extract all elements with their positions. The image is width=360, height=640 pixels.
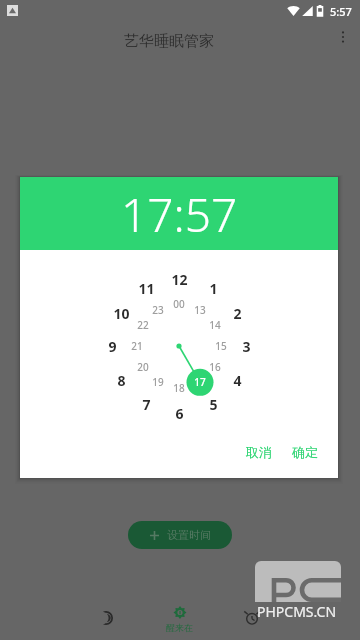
button[interactable]: 设置时间 xyxy=(128,521,232,549)
staticText: 7 xyxy=(142,395,151,414)
staticText: 11 xyxy=(138,279,155,298)
button[interactable]: Sleep at xyxy=(77,596,134,640)
staticText: 23 xyxy=(152,303,164,317)
staticText: 20 xyxy=(137,360,149,374)
staticText: 设置时间 xyxy=(167,528,211,542)
staticText: 14 xyxy=(209,318,221,332)
staticText: 17:57 xyxy=(121,183,238,246)
staticText: 12 xyxy=(171,270,188,289)
staticText: 5 xyxy=(209,395,218,414)
staticText: 19 xyxy=(152,375,164,389)
staticText: 4 xyxy=(233,371,242,390)
staticText: 6 xyxy=(175,404,184,423)
staticText: 艺华睡眠管家 xyxy=(124,32,214,51)
staticText: 21 xyxy=(131,339,143,353)
staticText: 2 xyxy=(233,304,242,323)
staticText: 16 xyxy=(209,360,221,374)
button[interactable]: 醒来在 xyxy=(151,596,208,640)
staticText: 醒来在 xyxy=(166,622,193,633)
staticText: 00 xyxy=(173,297,185,311)
staticText: 3 xyxy=(242,337,251,356)
staticText: 22 xyxy=(137,318,149,332)
staticText: 15 xyxy=(215,339,227,353)
button[interactable]: 取消 xyxy=(236,438,282,466)
staticText: 13 xyxy=(194,303,206,317)
staticText: PHPCMS.CN xyxy=(257,602,337,621)
staticText: 17 xyxy=(194,375,206,389)
button[interactable]: More options xyxy=(331,22,355,52)
button[interactable]: 确定 xyxy=(282,438,328,466)
staticText: 18 xyxy=(173,381,185,395)
staticText: 1 xyxy=(209,279,218,298)
button[interactable]: Alarm xyxy=(223,596,280,640)
staticText: 9 xyxy=(108,337,117,356)
staticText: 8 xyxy=(117,371,126,390)
staticText: 5:57 xyxy=(330,4,352,19)
staticText: 10 xyxy=(113,304,130,323)
